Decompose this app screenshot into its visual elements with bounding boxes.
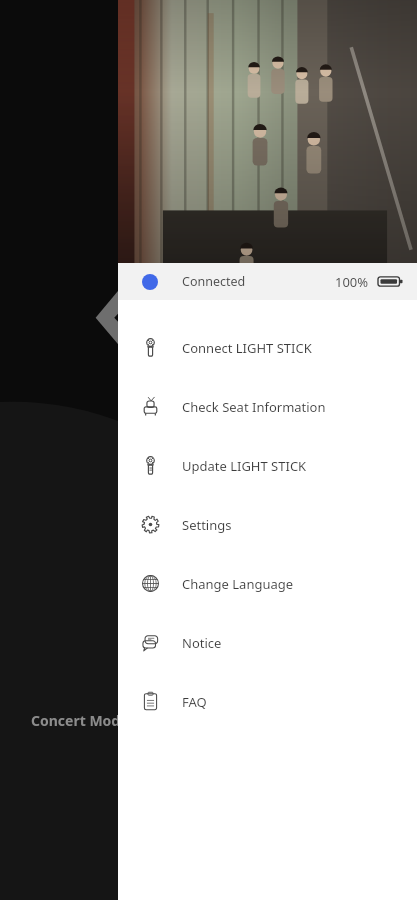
- staticText: Check Seat Information: [182, 398, 326, 416]
- staticText: Settings: [182, 516, 232, 534]
- staticText: Connected: [182, 273, 246, 290]
- button[interactable]: Connected: [118, 263, 417, 300]
- button[interactable]: Settings: [118, 495, 417, 554]
- button[interactable]: FAQ: [118, 672, 417, 731]
- other: Battery 100 percent: [378, 274, 403, 289]
- staticText: FAQ: [182, 693, 207, 711]
- button[interactable]: Notice: [118, 613, 417, 672]
- button[interactable]: Change Language: [118, 554, 417, 613]
- button[interactable]: Check Seat Information: [118, 377, 417, 436]
- staticText: Connect LIGHT STICK: [182, 339, 312, 357]
- staticText: Concert Mode: [31, 711, 129, 730]
- staticText: 100%: [335, 273, 369, 291]
- staticText: Change Language: [182, 575, 294, 593]
- button[interactable]: Update LIGHT STICK: [118, 436, 417, 495]
- button[interactable]: Connect LIGHT STICK: [118, 318, 417, 377]
- staticText: Update LIGHT STICK: [182, 457, 307, 475]
- staticText: Notice: [182, 634, 222, 652]
